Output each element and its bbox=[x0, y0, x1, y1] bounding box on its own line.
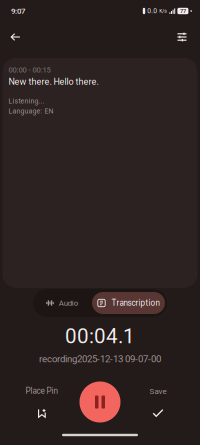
button[interactable]: Back bbox=[2, 24, 28, 50]
button[interactable]: Transcription bbox=[92, 292, 165, 314]
staticText: New there. Hello there. bbox=[8, 76, 98, 87]
staticText: 0.0 bbox=[147, 7, 157, 15]
staticText: 9:07 bbox=[11, 6, 25, 16]
staticText: Transcription bbox=[111, 298, 159, 308]
staticText: Listening... bbox=[8, 97, 44, 105]
staticText: Place Pin bbox=[25, 386, 58, 396]
button[interactable]: Audio bbox=[36, 292, 88, 314]
button[interactable]: Pause recording bbox=[76, 378, 124, 426]
staticText: Audio bbox=[59, 298, 78, 308]
button[interactable]: Place Pin bbox=[11, 381, 73, 423]
staticText: 00:00 - 00:15 bbox=[8, 65, 50, 74]
staticText: Save bbox=[149, 387, 166, 396]
button[interactable]: Settings bbox=[169, 24, 195, 50]
button[interactable]: Save bbox=[127, 381, 189, 423]
staticText: 77 bbox=[180, 8, 186, 14]
staticText: K/s bbox=[159, 8, 167, 14]
staticText: Language: EN bbox=[8, 107, 53, 115]
staticText: recording2025-12-13 09-07-00 bbox=[39, 353, 161, 364]
staticText: 00:04.1 bbox=[65, 324, 135, 348]
